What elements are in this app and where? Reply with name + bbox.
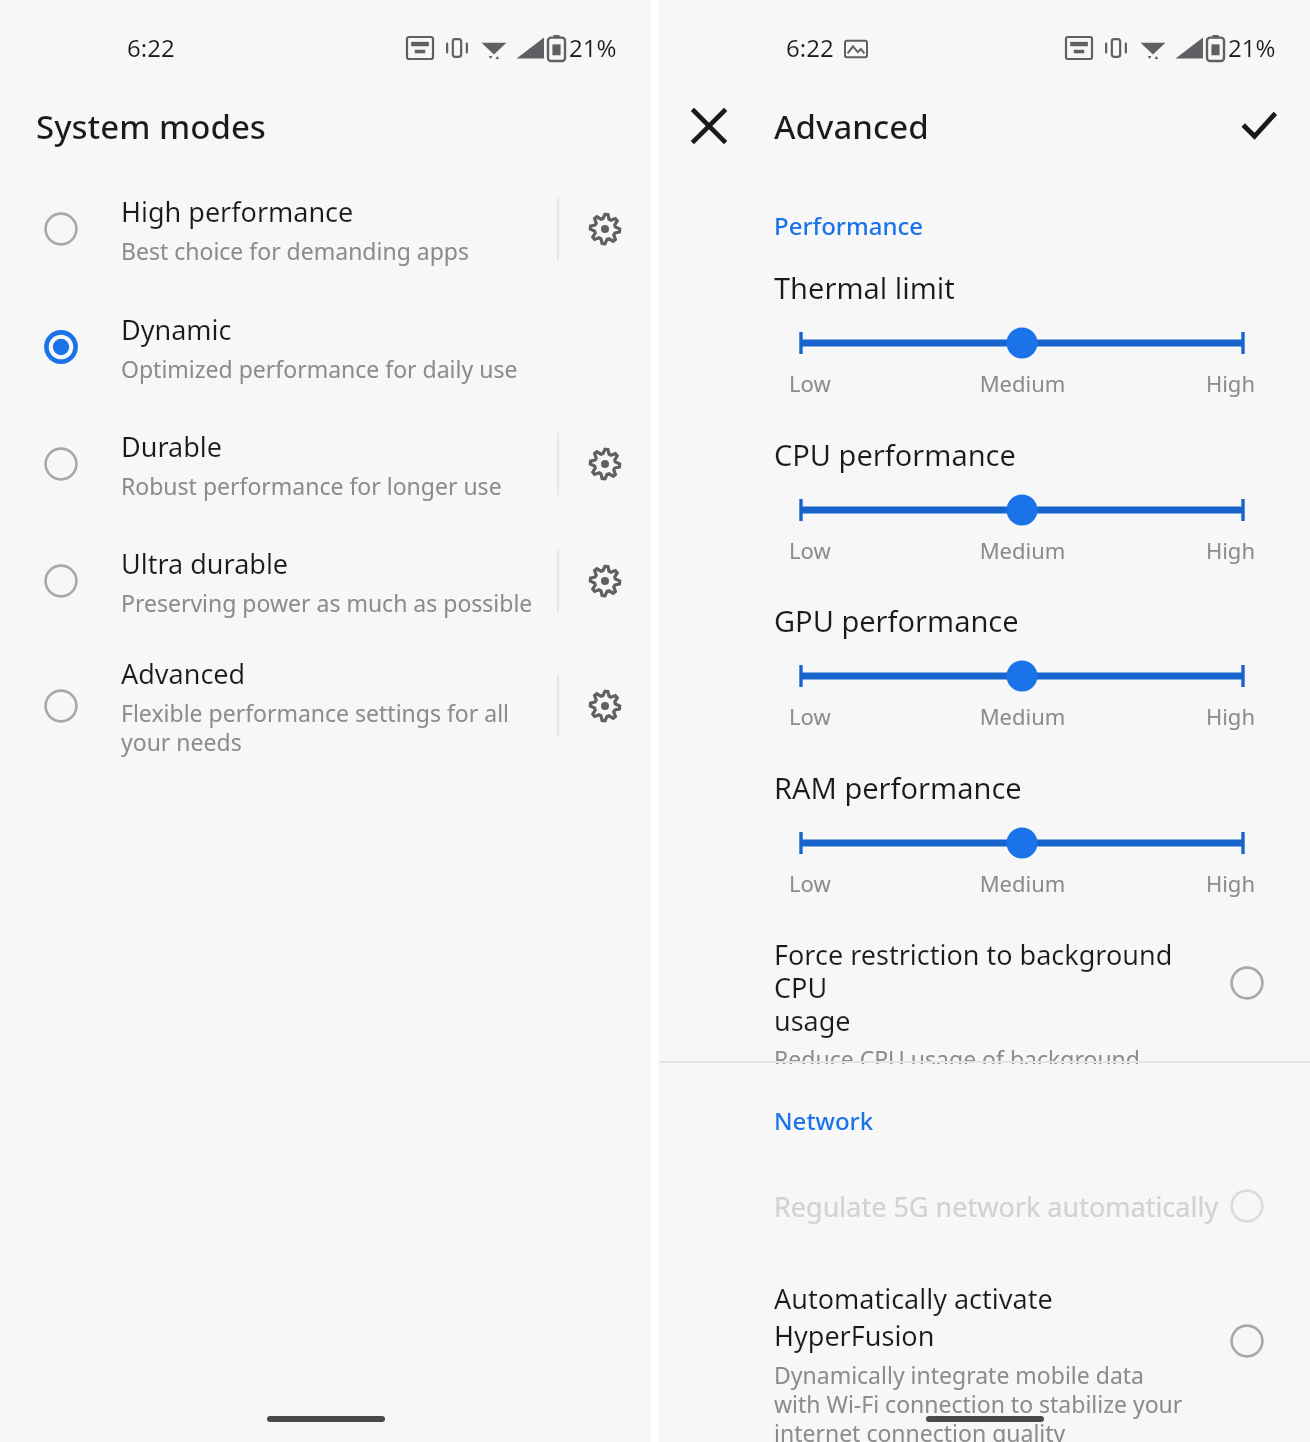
staticText: Thermal limit bbox=[774, 268, 955, 307]
button[interactable]: Settings for Durable bbox=[578, 437, 632, 491]
staticText: 6:22 bbox=[786, 31, 834, 64]
staticText: Advanced bbox=[121, 655, 246, 692]
staticText: High bbox=[1100, 368, 1255, 398]
staticText: CPU performance bbox=[774, 435, 1016, 474]
staticText: Dynamic bbox=[121, 311, 232, 348]
button[interactable]: Regulate 5G network automatically bbox=[659, 1168, 1310, 1244]
staticText: Medium bbox=[945, 868, 1100, 898]
button[interactable]: Automatically activate HyperFusion bbox=[659, 1262, 1310, 1442]
staticText: Force restriction to background CPU usag… bbox=[774, 936, 1194, 1039]
staticText: Medium bbox=[945, 701, 1100, 731]
staticText: 6:22 bbox=[127, 31, 175, 64]
staticText: GPU performance bbox=[774, 601, 1019, 640]
staticText: High performance bbox=[121, 193, 354, 230]
staticText: Preserving power as much as possible bbox=[121, 587, 533, 618]
staticText: Automatically activate HyperFusion bbox=[774, 1280, 1214, 1354]
button[interactable]: Close bbox=[681, 98, 737, 154]
staticText: High bbox=[1100, 535, 1255, 565]
staticText: Robust performance for longer use bbox=[121, 470, 502, 501]
staticText: Medium bbox=[945, 535, 1100, 565]
staticText: High bbox=[1100, 868, 1255, 898]
button[interactable]: Durable bbox=[0, 419, 651, 509]
staticText: Optimized performance for daily use bbox=[121, 353, 518, 384]
staticText: RAM performance bbox=[774, 768, 1022, 807]
staticText: System modes bbox=[36, 104, 266, 149]
staticText: Advanced bbox=[774, 104, 929, 149]
button[interactable]: Ultra durable bbox=[0, 536, 651, 626]
button[interactable]: Settings for High performance bbox=[578, 202, 632, 256]
staticText: Performance bbox=[774, 209, 924, 242]
staticText: Best choice for demanding apps bbox=[121, 235, 469, 266]
staticText: Medium bbox=[945, 368, 1100, 398]
button[interactable]: CPU performance slider bbox=[789, 490, 1255, 530]
button[interactable]: Force restriction to background CPU usag… bbox=[659, 915, 1310, 1043]
button[interactable]: Settings for Advanced bbox=[578, 679, 632, 733]
staticText: Low bbox=[789, 868, 945, 898]
staticText: Network bbox=[774, 1104, 874, 1137]
button[interactable]: High performance bbox=[0, 184, 651, 274]
staticText: Reduce CPU usage of background apps bbox=[774, 1043, 1194, 1064]
staticText: Flexible performance settings for all yo… bbox=[121, 697, 510, 758]
button[interactable]: Settings for Ultra durable bbox=[578, 554, 632, 608]
button[interactable]: Dynamic bbox=[0, 302, 651, 392]
staticText: 21% bbox=[1228, 31, 1276, 64]
button[interactable]: GPU performance slider bbox=[789, 656, 1255, 696]
staticText: Low bbox=[789, 368, 945, 398]
staticText: Regulate 5G network automatically bbox=[774, 1188, 1219, 1225]
button[interactable]: Thermal limit slider bbox=[789, 323, 1255, 363]
staticText: Ultra durable bbox=[121, 545, 289, 582]
staticText: Low bbox=[789, 535, 945, 565]
button[interactable]: Advanced bbox=[0, 645, 651, 767]
staticText: 21% bbox=[569, 31, 617, 64]
staticText: Dynamically integrate mobile data with W… bbox=[774, 1359, 1183, 1442]
staticText: Low bbox=[789, 701, 945, 731]
button[interactable]: RAM performance slider bbox=[789, 823, 1255, 863]
staticText: High bbox=[1100, 701, 1255, 731]
button[interactable]: Confirm bbox=[1231, 98, 1287, 154]
staticText: Durable bbox=[121, 428, 222, 465]
